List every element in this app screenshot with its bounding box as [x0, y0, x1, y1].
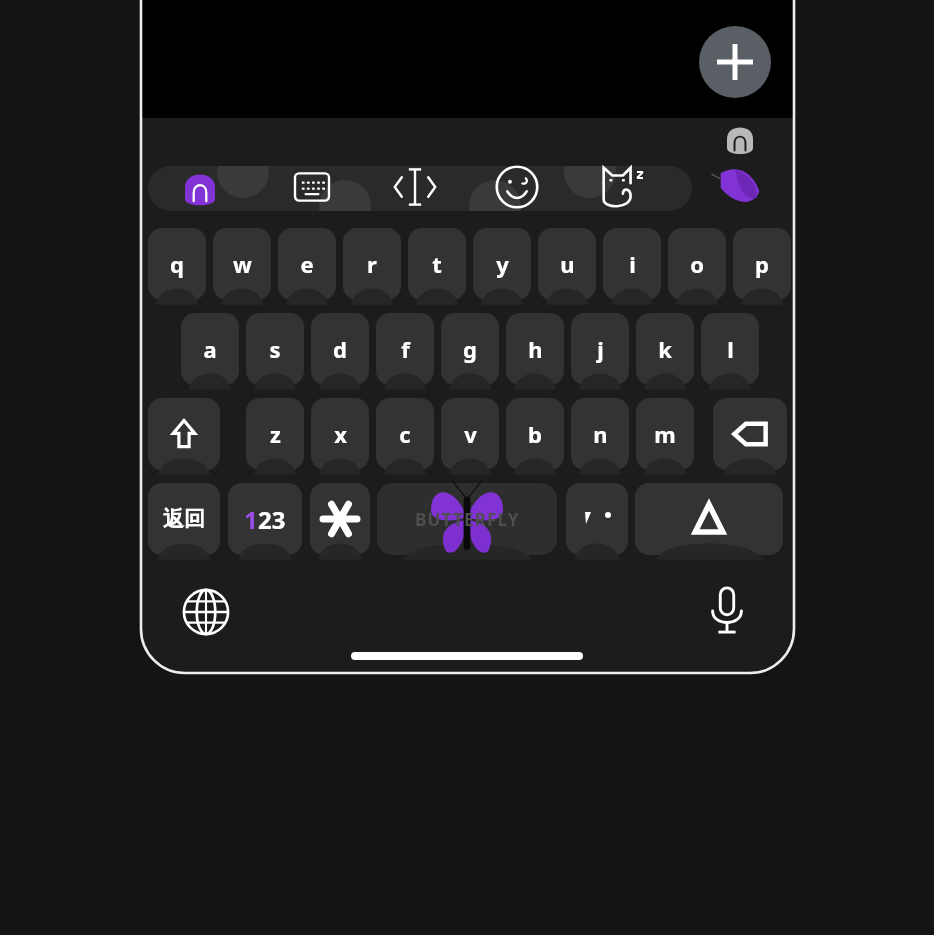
- button[interactable]: Keyboard settings: [288, 166, 336, 211]
- button[interactable]: t: [408, 228, 466, 300]
- staticText: h: [528, 334, 543, 364]
- button[interactable]: d: [311, 313, 369, 385]
- button[interactable]: Change language: [170, 576, 242, 648]
- staticText: m: [654, 419, 676, 449]
- staticText: t: [432, 249, 442, 279]
- staticText: 1: [244, 503, 258, 536]
- button[interactable]: k: [636, 313, 694, 385]
- staticText: 返回: [163, 506, 205, 532]
- staticText: BUTTERFLY: [415, 508, 520, 531]
- button[interactable]: b: [506, 398, 564, 470]
- button[interactable]: Space: [377, 483, 557, 555]
- staticText: l: [727, 334, 734, 364]
- button[interactable]: Theme: [176, 166, 224, 211]
- button[interactable]: e: [278, 228, 336, 300]
- button[interactable]: v: [441, 398, 499, 470]
- button[interactable]: j: [571, 313, 629, 385]
- staticText: v: [464, 419, 477, 449]
- button[interactable]: i: [603, 228, 661, 300]
- button[interactable]: w: [213, 228, 271, 300]
- button[interactable]: p: [733, 228, 791, 300]
- button[interactable]: Shift: [148, 398, 220, 470]
- staticText: g: [463, 334, 477, 364]
- button[interactable]: Enter: [635, 483, 783, 555]
- staticText: x: [334, 419, 347, 449]
- button[interactable]: f: [376, 313, 434, 385]
- staticText: z: [270, 419, 281, 449]
- staticText: s: [269, 334, 281, 364]
- button[interactable]: 1: [228, 483, 302, 555]
- staticText: r: [367, 249, 377, 279]
- button[interactable]: r: [343, 228, 401, 300]
- button[interactable]: o: [668, 228, 726, 300]
- staticText: a: [203, 334, 217, 364]
- button[interactable]: l: [701, 313, 759, 385]
- button[interactable]: m: [636, 398, 694, 470]
- button[interactable]: Add: [699, 26, 771, 98]
- staticText: u: [560, 249, 575, 279]
- button[interactable]: Butterfly theme: [716, 164, 764, 212]
- button[interactable]: s: [246, 313, 304, 385]
- button[interactable]: h: [506, 313, 564, 385]
- button[interactable]: g: [441, 313, 499, 385]
- staticText: y: [496, 249, 509, 279]
- staticText: c: [399, 419, 411, 449]
- staticText: n: [593, 419, 608, 449]
- staticText: e: [300, 249, 314, 279]
- staticText: d: [333, 334, 347, 364]
- staticText: q: [170, 249, 184, 279]
- button[interactable]: a: [181, 313, 239, 385]
- button[interactable]: Comma and period: [566, 483, 628, 555]
- staticText: i: [629, 249, 636, 279]
- button[interactable]: Voice input: [691, 574, 763, 646]
- button[interactable]: Cursor control: [391, 166, 439, 211]
- button[interactable]: n: [571, 398, 629, 470]
- button[interactable]: Assistant: [718, 118, 762, 162]
- staticText: b: [528, 419, 542, 449]
- button[interactable]: y: [473, 228, 531, 300]
- button[interactable]: Backspace: [713, 398, 787, 470]
- staticText: o: [690, 249, 704, 279]
- staticText: 23: [258, 503, 286, 536]
- button[interactable]: 返回: [148, 483, 220, 555]
- button[interactable]: u: [538, 228, 596, 300]
- button[interactable]: Symbols: [310, 483, 370, 555]
- staticText: f: [401, 334, 410, 364]
- staticText: j: [597, 334, 604, 364]
- button[interactable]: c: [376, 398, 434, 470]
- button[interactable]: q: [148, 228, 206, 300]
- staticText: w: [233, 249, 252, 279]
- button[interactable]: Emoji: [493, 166, 541, 211]
- staticText: p: [755, 249, 769, 279]
- button[interactable]: z: [246, 398, 304, 470]
- staticText: k: [658, 334, 672, 364]
- button[interactable]: x: [311, 398, 369, 470]
- button[interactable]: Stickers: [596, 166, 644, 211]
